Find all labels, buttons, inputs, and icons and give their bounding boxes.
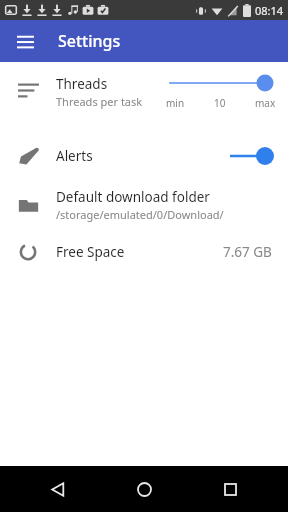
staticText: max	[255, 96, 276, 110]
button[interactable]: Back	[40, 471, 76, 507]
staticText: 10	[214, 96, 226, 110]
staticText: Default download folder	[56, 188, 210, 206]
button[interactable]: Open navigation menu	[8, 24, 42, 58]
button[interactable]: Alerts	[0, 132, 288, 180]
button[interactable]: Threads	[0, 62, 288, 132]
staticText: 7.67 GB	[223, 243, 272, 261]
staticText: Threads per task	[56, 94, 143, 109]
button[interactable]: Free Space	[0, 230, 288, 274]
staticText: /storage/emulated/0/Download/	[56, 207, 224, 222]
button[interactable]: Recent apps	[212, 471, 248, 507]
button[interactable]: Home	[126, 471, 162, 507]
staticText: Alerts	[56, 147, 230, 165]
staticText: Threads	[56, 75, 108, 93]
button[interactable]: Threads slider	[166, 74, 276, 92]
staticText: 08:14	[255, 3, 284, 18]
button[interactable]: Alerts toggle, on	[230, 143, 274, 169]
staticText: Settings	[58, 30, 121, 52]
staticText: Free Space	[56, 243, 223, 261]
staticText: min	[166, 96, 185, 110]
button[interactable]: Default download folder	[0, 180, 288, 230]
